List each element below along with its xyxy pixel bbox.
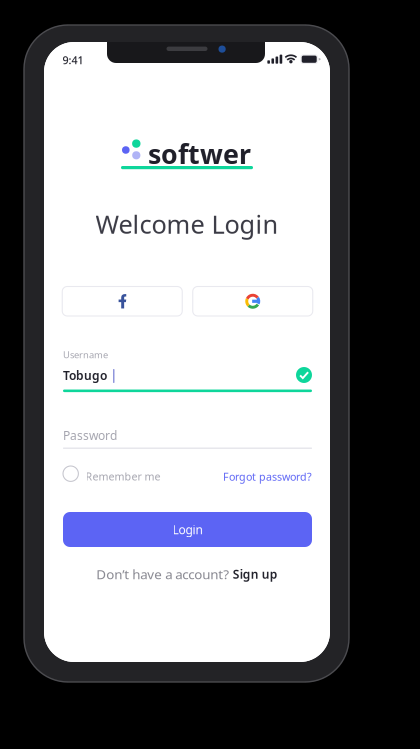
staticText: Forgot password? — [223, 469, 312, 484]
button[interactable]: Continue with Facebook — [62, 286, 182, 316]
staticText: Password — [63, 427, 117, 443]
staticText: 9:41 — [62, 53, 83, 67]
staticText: Don’t have a account? — [96, 565, 229, 583]
staticText: Login — [172, 521, 202, 537]
button[interactable]: Remember me — [63, 466, 163, 482]
staticText: Welcome Login — [95, 207, 278, 241]
button[interactable]: Forgot password? — [222, 468, 312, 484]
staticText: Username — [63, 348, 108, 361]
button[interactable]: Continue with Google — [193, 286, 313, 316]
staticText: Remember me — [85, 469, 160, 484]
staticText: Sign up — [233, 566, 278, 582]
staticText: Tobugo — [63, 367, 107, 383]
button[interactable]: Don’t have a account? — [44, 565, 330, 583]
button[interactable]: Login — [63, 512, 312, 547]
staticText: softwer — [148, 136, 251, 171]
